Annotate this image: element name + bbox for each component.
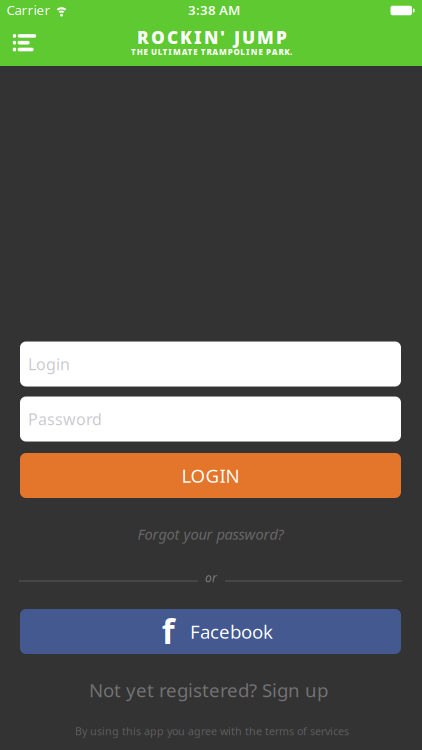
textField[interactable]: Login — [20, 341, 401, 386]
staticText: Facebook — [190, 619, 273, 644]
button[interactable]: Not yet registered? Sign up — [81, 670, 336, 710]
staticText: or — [205, 569, 217, 585]
staticText: Password — [28, 408, 102, 430]
staticText: THE ULTIMATE TRAMPOLINE PARK. — [131, 46, 292, 57]
textField[interactable]: Password — [20, 396, 401, 441]
staticText: f — [162, 609, 175, 653]
staticText: Login — [28, 353, 70, 375]
staticText: Forgot your password? — [137, 524, 283, 544]
staticText: Not yet registered? Sign up — [89, 678, 328, 702]
staticText: LOGIN — [181, 463, 239, 488]
button[interactable]: f — [20, 609, 401, 654]
staticText: ROCKIN' JUMP — [137, 26, 287, 49]
staticText: By using this app you agree with the ter… — [75, 724, 349, 738]
button[interactable]: Forgot your password? — [129, 516, 291, 552]
button[interactable]: Menu — [3, 22, 46, 63]
button[interactable]: LOGIN — [20, 453, 401, 498]
staticText: Carrier — [6, 1, 50, 19]
staticText: 3:38 AM — [188, 1, 240, 19]
